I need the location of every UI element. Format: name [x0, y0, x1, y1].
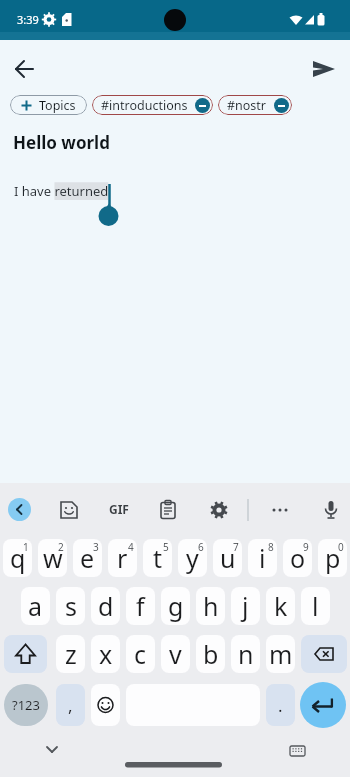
- button[interactable]: c: [126, 635, 155, 673]
- button[interactable]: [318, 497, 344, 523]
- button[interactable]: #nostr: [218, 95, 292, 115]
- staticText: 8: [268, 540, 274, 554]
- staticText: 6: [198, 540, 204, 554]
- button[interactable]: d: [91, 587, 120, 625]
- button[interactable]: m: [266, 635, 295, 673]
- staticText: j: [242, 589, 249, 623]
- staticText: u: [220, 541, 236, 575]
- staticText: 0: [338, 540, 344, 554]
- button[interactable]: e: [73, 539, 102, 577]
- staticText: e: [80, 541, 95, 575]
- staticText: c: [134, 637, 147, 671]
- staticText: d: [98, 589, 114, 623]
- staticText: k: [274, 589, 288, 623]
- staticText: 5: [163, 540, 169, 554]
- staticText: o: [290, 541, 306, 575]
- staticText: Hello world: [13, 131, 110, 154]
- staticText: f: [136, 589, 145, 623]
- button[interactable]: k: [266, 587, 295, 625]
- staticText: l: [312, 589, 319, 623]
- button[interactable]: [91, 684, 120, 726]
- staticText: .: [278, 694, 283, 717]
- staticText: p: [325, 541, 341, 575]
- staticText: t: [153, 541, 163, 575]
- button[interactable]: #introductions: [92, 95, 213, 115]
- button[interactable]: o: [283, 539, 312, 577]
- button[interactable]: [4, 635, 47, 673]
- staticText: g: [168, 589, 184, 623]
- staticText: n: [238, 637, 254, 671]
- button[interactable]: x: [91, 635, 120, 673]
- staticText: i: [259, 541, 266, 575]
- staticText: z: [65, 637, 77, 671]
- button[interactable]: [310, 53, 342, 85]
- button[interactable]: p: [318, 539, 347, 577]
- button[interactable]: v: [161, 635, 190, 673]
- button[interactable]: f: [126, 587, 155, 625]
- staticText: h: [203, 589, 219, 623]
- staticText: v: [169, 637, 182, 671]
- button[interactable]: t: [143, 539, 172, 577]
- staticText: y: [186, 541, 199, 575]
- button[interactable]: y: [178, 539, 207, 577]
- button[interactable]: ,: [56, 684, 85, 726]
- button[interactable]: .: [266, 684, 295, 726]
- staticText: ?123: [12, 696, 40, 714]
- staticText: GIF: [109, 501, 129, 517]
- button[interactable]: s: [56, 587, 85, 625]
- button[interactable]: [301, 635, 347, 673]
- staticText: x: [99, 637, 113, 671]
- button[interactable]: [155, 497, 181, 523]
- staticText: w: [43, 541, 63, 575]
- button[interactable]: [300, 682, 346, 728]
- staticText: #introductions: [101, 97, 188, 114]
- button[interactable]: n: [231, 635, 260, 673]
- staticText: 4: [128, 540, 134, 554]
- staticText: a: [28, 589, 43, 623]
- button[interactable]: z: [56, 635, 85, 673]
- staticText: 3: [93, 540, 99, 554]
- button[interactable]: [8, 498, 31, 521]
- staticText: 1: [23, 540, 29, 554]
- staticText: r: [117, 541, 128, 575]
- staticText: #nostr: [227, 97, 267, 114]
- staticText: ,: [68, 694, 73, 717]
- button[interactable]: q: [3, 539, 32, 577]
- button[interactable]: ?123: [4, 684, 48, 726]
- button[interactable]: g: [161, 587, 190, 625]
- button[interactable]: GIF: [103, 498, 134, 520]
- staticText: s: [65, 589, 77, 623]
- staticText: m: [269, 637, 293, 671]
- button[interactable]: b: [196, 635, 225, 673]
- button[interactable]: [206, 497, 232, 523]
- button[interactable]: h: [196, 587, 225, 625]
- button[interactable]: j: [231, 587, 260, 625]
- button[interactable]: l: [301, 587, 330, 625]
- button[interactable]: r: [108, 539, 137, 577]
- staticText: 2: [58, 540, 64, 554]
- button[interactable]: [56, 497, 82, 523]
- button[interactable]: w: [38, 539, 67, 577]
- button[interactable]: [9, 53, 41, 85]
- staticText: 7: [233, 540, 239, 554]
- staticText: 9: [303, 540, 309, 554]
- staticText: 3:39: [17, 12, 39, 27]
- button[interactable]: u: [213, 539, 242, 577]
- staticText: Topics: [39, 97, 76, 114]
- button[interactable]: i: [248, 539, 277, 577]
- button[interactable]: [267, 499, 293, 519]
- button[interactable]: a: [21, 587, 50, 625]
- button[interactable]: Topics: [10, 95, 87, 115]
- staticText: b: [203, 637, 219, 671]
- staticText: q: [10, 541, 26, 575]
- staticText: I have returned: [14, 182, 109, 200]
